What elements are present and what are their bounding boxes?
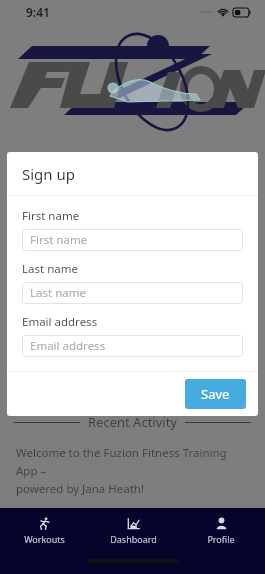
- staticText: 9:41: [26, 4, 50, 20]
- button[interactable]: Last name: [22, 282, 243, 304]
- button[interactable]: First name: [22, 229, 243, 251]
- staticText: First name: [30, 232, 88, 248]
- button[interactable]: Workouts: [0, 508, 89, 553]
- staticText: Workouts: [24, 533, 65, 545]
- staticText: Last name: [22, 261, 78, 277]
- button[interactable]: Profile: [177, 508, 265, 553]
- staticText: Last name: [30, 285, 86, 301]
- staticText: Recent Activity: [88, 413, 177, 431]
- button[interactable]: Email address: [22, 335, 243, 357]
- staticText: Sign up: [22, 164, 75, 184]
- staticText: Email address: [30, 338, 106, 354]
- staticText: Email address: [22, 314, 98, 330]
- button[interactable]: Dashboard: [89, 508, 177, 553]
- staticText: Profile: [207, 533, 235, 545]
- staticText: Save: [201, 385, 230, 403]
- staticText: First name: [22, 208, 80, 224]
- staticText: Welcome to the Fuzion Fitness Training A…: [16, 445, 249, 496]
- staticText: Dashboard: [110, 533, 157, 545]
- button[interactable]: Save: [185, 379, 246, 409]
